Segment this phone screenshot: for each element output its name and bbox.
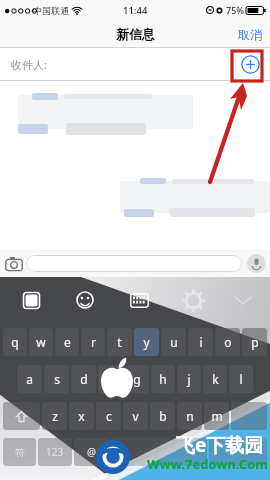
staticText: h — [159, 371, 167, 387]
button[interactable]: Camera — [4, 254, 24, 274]
button[interactable]: Keyboard theme — [128, 289, 150, 311]
button[interactable]: w — [29, 328, 53, 356]
staticText: b — [159, 408, 167, 424]
staticText: 75% — [226, 4, 244, 16]
button[interactable]: Space — [110, 438, 207, 466]
button[interactable]: l — [229, 365, 253, 393]
staticText: o — [224, 334, 232, 350]
button[interactable]: 取消 — [230, 23, 270, 46]
button[interactable]: Return — [209, 438, 267, 466]
staticText: 收件人: — [11, 57, 47, 72]
staticText: 中国联通 — [33, 5, 69, 16]
button[interactable]: Emoji — [74, 289, 96, 311]
staticText: k — [212, 371, 219, 387]
staticText: 取消 — [238, 27, 262, 42]
button[interactable]: e — [55, 328, 79, 356]
staticText: w — [36, 334, 46, 350]
staticText: c — [106, 408, 112, 424]
button[interactable]: g — [125, 365, 149, 393]
staticText: t — [117, 334, 122, 350]
button[interactable]: Add recipient — [241, 55, 260, 74]
button[interactable]: d — [71, 365, 96, 393]
staticText: y — [143, 334, 150, 350]
button[interactable]: u — [161, 328, 186, 356]
staticText: l — [239, 371, 243, 387]
button[interactable]: h — [151, 365, 175, 393]
button[interactable]: z — [42, 402, 67, 430]
button[interactable]: t — [107, 328, 132, 356]
staticText: 符 — [15, 446, 25, 459]
button[interactable]: n — [177, 402, 202, 430]
button[interactable]: k — [203, 365, 227, 393]
staticText: s — [54, 371, 60, 387]
button[interactable]: b — [150, 402, 175, 430]
staticText: Www.7edown.Com — [147, 455, 268, 473]
staticText: r — [91, 334, 96, 350]
button[interactable]: Settings — [182, 289, 204, 311]
button[interactable]: Voice input — [247, 254, 266, 273]
button[interactable]: Hide keyboard — [232, 289, 254, 311]
button[interactable]: Shift — [3, 402, 40, 430]
button[interactable]: r — [81, 328, 105, 356]
button[interactable]: a — [17, 365, 42, 393]
staticText: u — [170, 334, 178, 350]
button[interactable] — [26, 255, 242, 272]
button[interactable]: m — [204, 402, 229, 430]
staticText: p — [251, 334, 259, 350]
staticText: n — [186, 408, 194, 424]
staticText: i — [199, 334, 203, 350]
button[interactable]: i — [188, 328, 213, 356]
button[interactable]: f — [98, 365, 123, 393]
staticText: x — [78, 408, 85, 424]
button[interactable]: y — [134, 328, 159, 356]
staticText: 123 — [46, 445, 64, 459]
button[interactable]: q — [3, 328, 27, 356]
staticText: 新信息 — [116, 26, 155, 42]
staticText: j — [187, 371, 191, 387]
button[interactable]: s — [44, 365, 69, 393]
staticText: g — [133, 371, 141, 387]
button[interactable]: Delete — [231, 402, 267, 430]
staticText: q — [11, 334, 19, 350]
staticText: d — [80, 371, 88, 387]
button[interactable]: x — [69, 402, 94, 430]
button[interactable]: 符 — [3, 438, 36, 466]
button[interactable]: @ — [74, 438, 108, 466]
button[interactable]: p — [242, 328, 267, 356]
button[interactable]: c — [96, 402, 121, 430]
staticText: z — [52, 408, 58, 424]
staticText: a — [26, 371, 33, 387]
button[interactable]: Sogou input — [20, 289, 42, 311]
staticText: v — [132, 408, 139, 424]
button[interactable]: o — [215, 328, 240, 356]
button[interactable]: 123 — [38, 438, 72, 466]
button[interactable]: v — [123, 402, 148, 430]
staticText: m — [211, 408, 223, 424]
staticText: 11:44 — [123, 4, 148, 17]
staticText: @ — [87, 445, 96, 459]
staticText: 飞e下载园 — [176, 432, 264, 458]
button[interactable]: j — [177, 365, 201, 393]
staticText: e — [64, 334, 71, 350]
